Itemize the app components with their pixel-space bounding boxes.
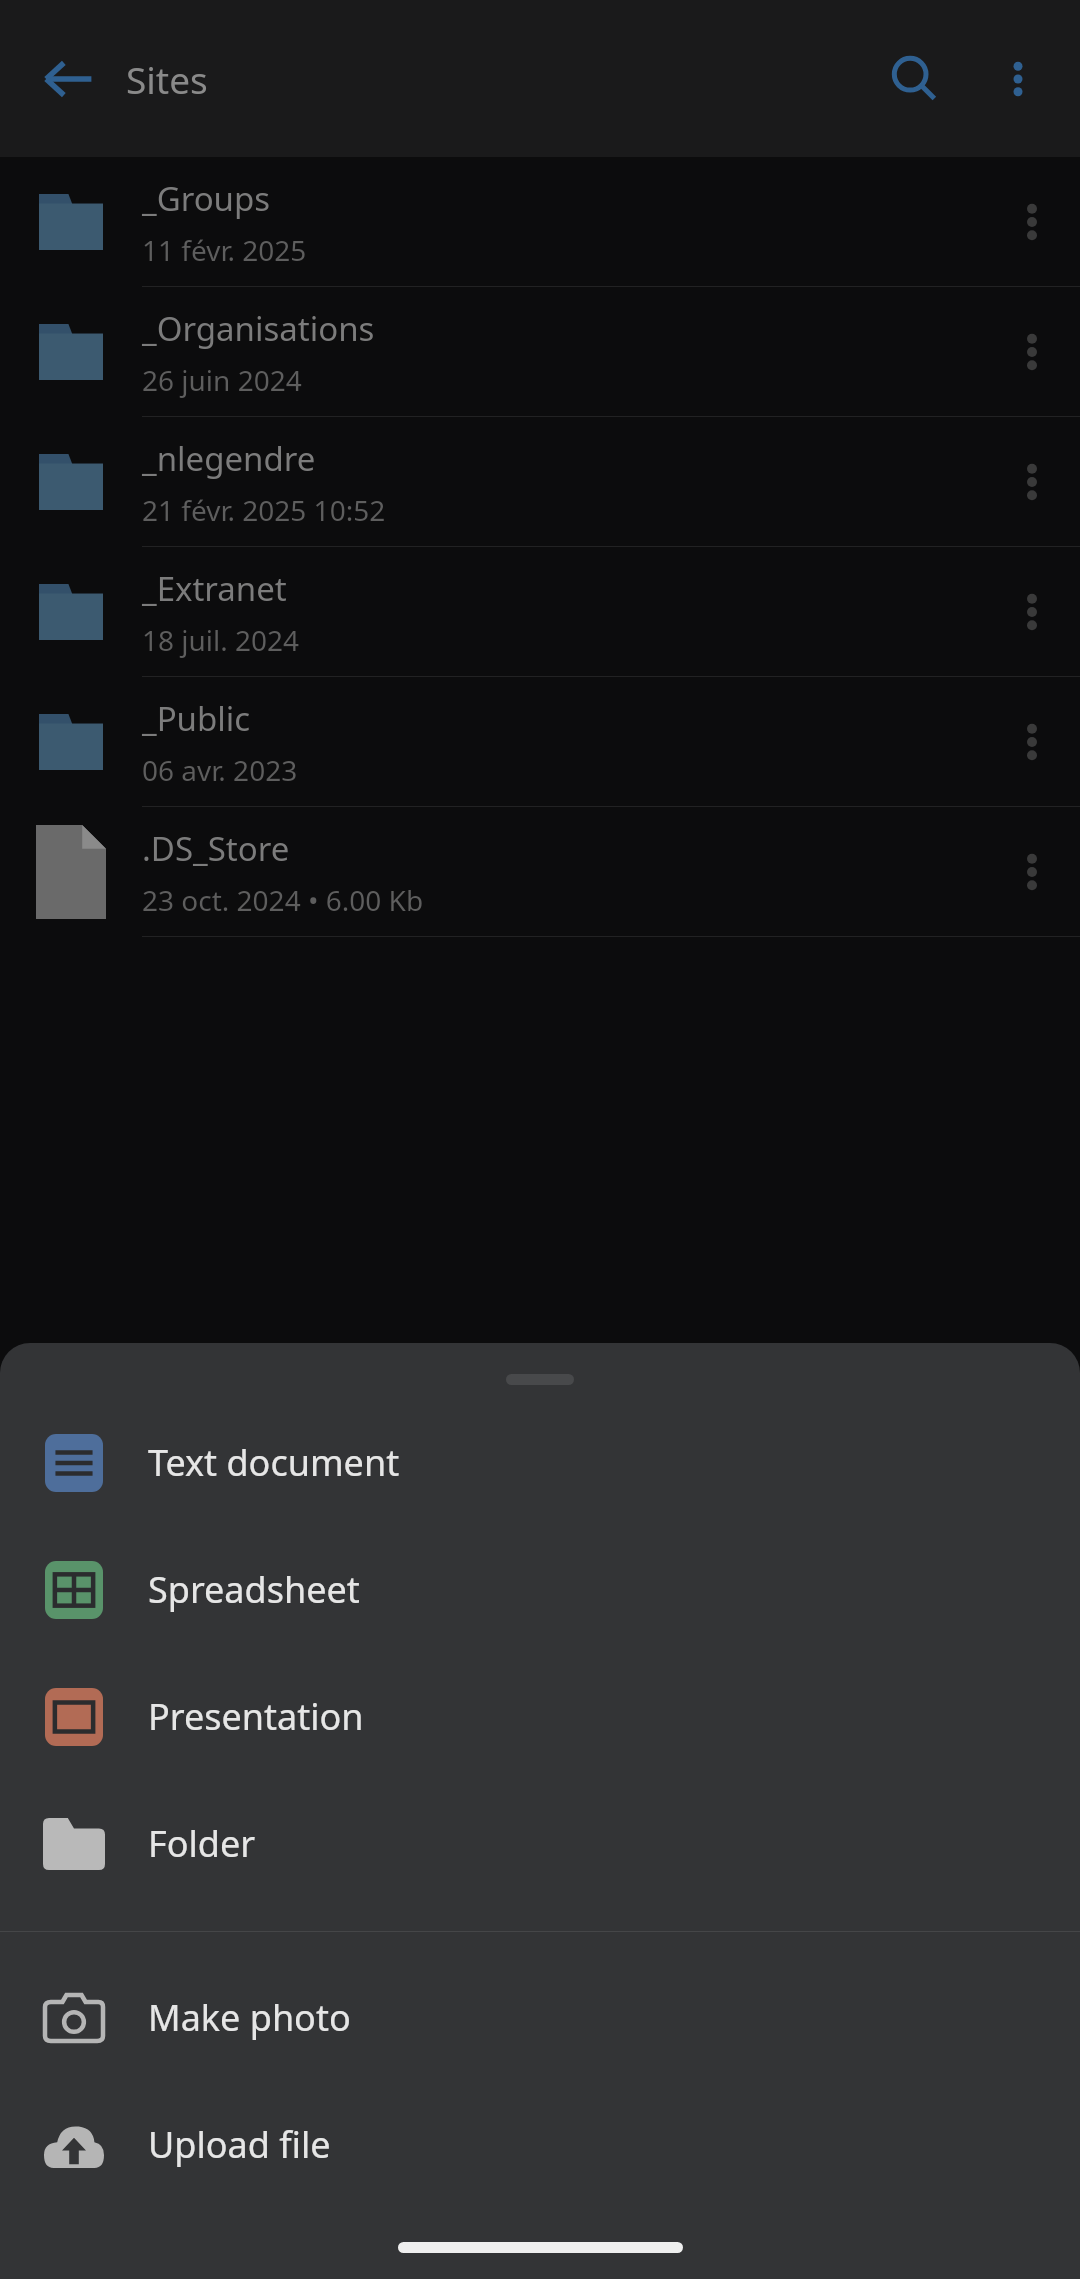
staticText: _Public	[142, 696, 251, 741]
staticText: Presentation	[148, 1692, 364, 1741]
button[interactable]: Folder	[0, 1780, 1080, 1907]
button[interactable]: Item options	[984, 287, 1080, 417]
staticText: 26 juin 2024	[142, 361, 302, 399]
staticText: Make photo	[148, 1993, 351, 2042]
button[interactable]: Search	[862, 27, 966, 131]
button[interactable]: Item options	[984, 677, 1080, 807]
staticText: _Organisations	[142, 306, 375, 351]
button[interactable]: _Groups	[0, 157, 1080, 287]
staticText: Folder	[148, 1819, 256, 1868]
button[interactable]: _nlegendre	[0, 417, 1080, 547]
staticText: .DS_Store	[142, 826, 290, 871]
staticText: _nlegendre	[142, 436, 316, 481]
button[interactable]: Item options	[984, 807, 1080, 937]
button[interactable]: _Public	[0, 677, 1080, 807]
button[interactable]: Text document	[0, 1399, 1080, 1526]
button[interactable]: _Organisations	[0, 287, 1080, 417]
button[interactable]: Back	[14, 25, 122, 133]
staticText: _Groups	[142, 176, 271, 221]
staticText: 06 avr. 2023	[142, 751, 298, 789]
staticText: Upload file	[148, 2120, 331, 2169]
staticText: _Extranet	[142, 566, 287, 611]
button[interactable]: .DS_Store	[0, 807, 1080, 937]
staticText: 21 févr. 2025 10:52	[142, 491, 386, 529]
button[interactable]: Presentation	[0, 1653, 1080, 1780]
button[interactable]: Upload file	[0, 2081, 1080, 2208]
staticText: 11 févr. 2025	[142, 231, 307, 269]
button[interactable]: Item options	[984, 157, 1080, 287]
button[interactable]: Item options	[984, 547, 1080, 677]
staticText: Spreadsheet	[148, 1565, 360, 1614]
button[interactable]: Item options	[984, 417, 1080, 547]
staticText: 18 juil. 2024	[142, 621, 300, 659]
button[interactable]: _Extranet	[0, 547, 1080, 677]
button[interactable]: More options	[966, 27, 1070, 131]
staticText: Text document	[148, 1438, 400, 1487]
button[interactable]: Spreadsheet	[0, 1526, 1080, 1653]
staticText: Sites	[126, 54, 208, 104]
staticText: 23 oct. 2024 • 6.00 Kb	[142, 881, 424, 919]
button[interactable]: Make photo	[0, 1954, 1080, 2081]
